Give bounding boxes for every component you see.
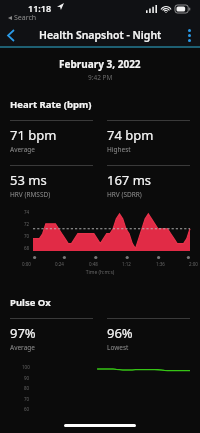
staticText: 100 (22, 364, 30, 370)
staticText: 97% (10, 324, 36, 342)
staticText: 0:48 (89, 422, 98, 428)
staticText: 90 (24, 375, 30, 381)
staticText: Health Snapshot - Night (39, 28, 162, 42)
staticText: 0:00 (22, 261, 31, 267)
staticText: HRV (RMSSD) (10, 190, 51, 199)
staticText: 9:42 PM (88, 73, 113, 82)
staticText: 70 (24, 233, 30, 239)
staticText: 1:12 (122, 261, 131, 267)
staticText: 0:24 (55, 261, 64, 267)
staticText: 74 bpm (107, 126, 154, 144)
staticText: Average (10, 343, 35, 352)
staticText: Average (10, 145, 35, 154)
button[interactable]: 71 bpm (10, 120, 93, 154)
staticText: Lowest (107, 343, 129, 352)
staticText: 53 ms (10, 171, 47, 189)
button[interactable]: 74 bpm (107, 120, 190, 154)
staticText: Search (14, 13, 37, 23)
staticText: 60 (24, 406, 30, 412)
staticText: 80 (24, 385, 30, 391)
staticText: 71 bpm (10, 126, 57, 144)
staticText: 11:18 (28, 2, 52, 14)
staticText: Heart Rate (bpm) (10, 98, 92, 111)
button[interactable]: Back (0, 24, 22, 46)
button[interactable]: 97% (10, 318, 93, 352)
staticText: 1:36 (156, 261, 165, 267)
staticText: HRV (SDRR) (107, 190, 142, 199)
staticText: 74 (24, 209, 30, 215)
staticText: Time (h:m:s) (0, 269, 200, 276)
staticText: 96% (107, 324, 133, 342)
button[interactable]: 96% (107, 318, 190, 352)
staticText: 1:12 (122, 422, 131, 428)
staticText: 72 (24, 221, 30, 227)
button[interactable]: More options (178, 24, 200, 46)
button[interactable]: 167 ms (107, 165, 190, 199)
staticText: 2:00 (189, 261, 198, 267)
staticText: 0:48 (89, 261, 98, 267)
staticText: Pulse Ox (10, 296, 51, 309)
staticText: Highest (107, 145, 131, 154)
staticText: 167 ms (107, 171, 152, 189)
button[interactable]: 53 ms (10, 165, 93, 199)
staticText: February 3, 2022 (59, 57, 141, 71)
staticText: 68 (24, 245, 30, 251)
staticText: 70 (24, 396, 30, 402)
